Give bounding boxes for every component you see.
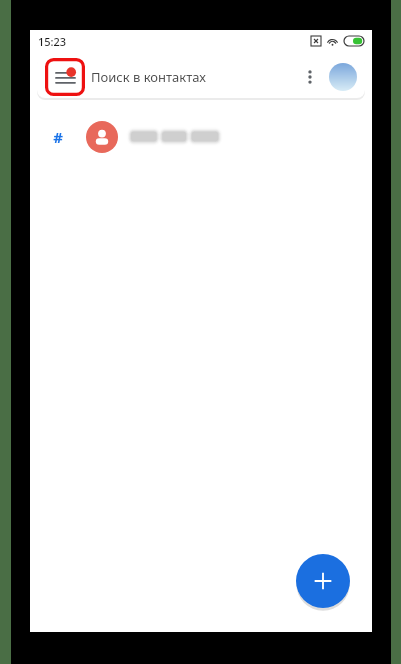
- button[interactable]: Open navigation menu: [45, 58, 85, 96]
- staticText: #: [53, 127, 63, 147]
- button[interactable]: Account: [329, 63, 357, 91]
- button[interactable]: Add contact: [296, 554, 350, 608]
- button[interactable]: #: [30, 112, 372, 162]
- staticText: Поиск в контактах: [91, 68, 206, 86]
- button[interactable]: More options: [297, 64, 323, 90]
- staticText: 15:23: [38, 34, 67, 49]
